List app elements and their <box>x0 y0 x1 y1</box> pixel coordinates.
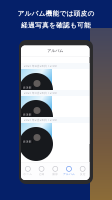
staticText: 2021年4月28日 12:00 <box>24 64 57 68</box>
staticText: アルバム <box>63 172 75 176</box>
staticText: 頭頂部 <box>23 140 32 143</box>
button[interactable]: 2021年4月28日 12:00 <box>21 63 89 90</box>
staticText: 撮影 <box>52 172 58 176</box>
staticText: アルバム <box>47 48 63 53</box>
staticText: 2021年2月28日 12:00 <box>24 118 57 122</box>
staticText: アルバム機能では頭皮の <box>17 9 94 18</box>
staticText: 設定 <box>80 172 86 176</box>
button[interactable]: 2021年3月28日 12:00 <box>21 90 89 117</box>
button[interactable]: ホーム <box>21 162 35 180</box>
staticText: ホーム <box>23 172 32 176</box>
staticText: 2021年3月28日 12:00 <box>24 91 57 95</box>
staticText: 頭頂部 <box>23 86 32 89</box>
button[interactable]: 2021年2月28日 12:00 <box>21 117 89 144</box>
button[interactable]: 撮影 <box>48 162 62 180</box>
staticText: 記録 <box>39 172 45 176</box>
button[interactable]: 設定 <box>76 162 89 180</box>
button[interactable]: 記録 <box>35 162 48 180</box>
staticText: 経過写真を確認も可能 <box>21 21 91 29</box>
staticText: 頭頂部 <box>23 113 32 116</box>
button[interactable]: アルバム <box>62 162 76 180</box>
